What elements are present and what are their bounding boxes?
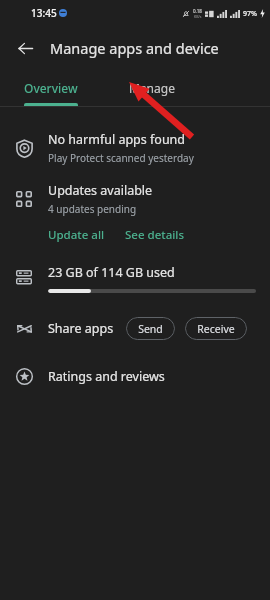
staticText: Manage: [129, 80, 175, 96]
staticText: KB/s: [194, 14, 202, 19]
staticText: Overview: [24, 80, 78, 96]
staticText: Share apps: [48, 320, 114, 337]
button[interactable]: No harmful apps found: [0, 122, 270, 174]
staticText: 97%: [243, 9, 257, 19]
button[interactable]: Receive: [185, 317, 247, 340]
button[interactable]: Update all: [48, 224, 105, 246]
button[interactable]: Back: [8, 31, 42, 65]
button[interactable]: Send: [126, 317, 175, 340]
staticText: See details: [125, 227, 185, 243]
staticText: Manage apps and device: [50, 38, 219, 58]
staticText: 0.18: [193, 8, 202, 14]
button[interactable]: Overview: [0, 70, 102, 106]
button[interactable]: Ratings and reviews: [0, 352, 270, 400]
staticText: Play Protect scanned yesterday: [48, 151, 194, 165]
button[interactable]: Manage: [102, 70, 202, 106]
staticText: Send: [138, 322, 163, 336]
staticText: 13:45: [31, 6, 57, 20]
staticText: Receive: [197, 322, 235, 336]
button[interactable]: Updates available: [0, 174, 270, 224]
staticText: 23 GB of 114 GB used: [48, 264, 175, 281]
staticText: Ratings and reviews: [48, 368, 165, 385]
staticText: 4 updates pending: [48, 202, 137, 216]
button[interactable]: 23 GB of 114 GB used: [0, 252, 270, 304]
button[interactable]: See details: [125, 224, 185, 246]
staticText: Updates available: [48, 182, 153, 199]
staticText: Update all: [48, 227, 105, 243]
staticText: No harmful apps found: [48, 131, 186, 148]
